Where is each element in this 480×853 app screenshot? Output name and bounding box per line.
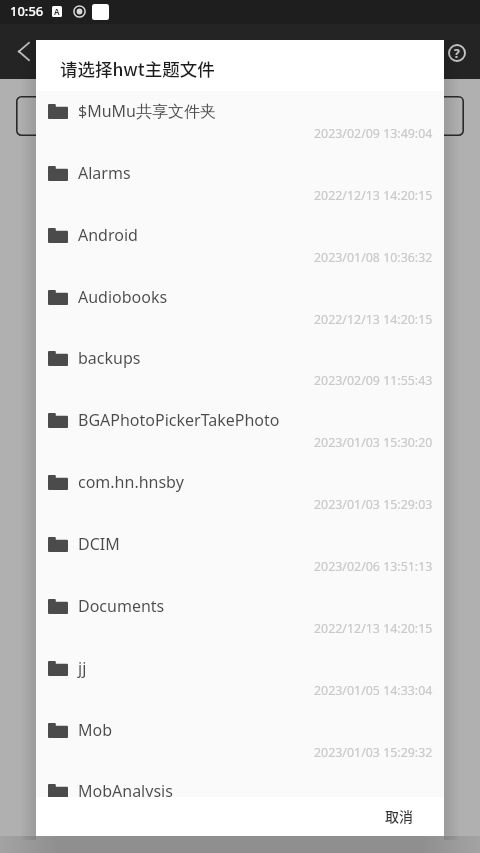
staticText: 2023/01/08 10:36:32 [314,249,433,266]
staticText: 10:56 [10,2,44,20]
staticText: $MuMu共享文件夹 [78,100,216,122]
staticText: 2022/12/13 14:20:15 [314,620,433,637]
button[interactable]: Alarms [36,152,444,214]
staticText: 2023/02/06 13:51:13 [314,558,433,575]
button[interactable]: Android [36,214,444,276]
button[interactable]: BGAPhotoPickerTakePhoto [36,399,444,461]
staticText: 2023/01/03 15:30:20 [314,434,433,451]
staticText: Mob [78,719,113,741]
button[interactable]: Mob [36,709,444,771]
staticText: 取消 [385,806,413,826]
staticText: backups [78,347,141,369]
staticText: 2023/02/09 13:49:04 [314,125,433,142]
staticText: 2022/12/13 14:20:15 [314,187,433,204]
staticText: ? [454,45,460,61]
staticText: Documents [78,595,165,617]
button[interactable]: Audiobooks [36,276,444,338]
button[interactable]: com.hn.hnsby [36,461,444,523]
button[interactable]: $MuMu共享文件夹 [36,91,444,152]
staticText: BGAPhotoPickerTakePhoto [78,409,280,431]
staticText: jj [78,657,87,679]
staticText: Audiobooks [78,286,168,308]
staticText: 2023/01/03 15:29:03 [314,496,433,513]
staticText: 2023/01/05 14:33:04 [314,682,433,699]
button[interactable]: DCIM [36,523,444,585]
button[interactable]: backups [36,337,444,399]
staticText: DCIM [78,533,120,555]
button[interactable]: Back [3,31,43,71]
staticText: Alarms [78,162,131,184]
staticText: 2023/02/09 11:55:43 [314,372,433,389]
staticText: 2023/01/03 15:29:32 [314,744,433,761]
button[interactable]: Documents [36,585,444,647]
staticText: Android [78,224,138,246]
staticText: com.hn.hnsby [78,471,184,493]
button[interactable]: 取消 [374,801,424,833]
staticText: A [54,6,60,17]
staticText: MobAnalysis [78,780,173,797]
button[interactable]: MobAnalysis [36,770,444,797]
staticText: 请选择hwt主题文件 [60,56,215,81]
button[interactable]: jj [36,647,444,709]
button[interactable]: Help [437,33,477,73]
staticText: 2022/12/13 14:20:15 [314,311,433,328]
